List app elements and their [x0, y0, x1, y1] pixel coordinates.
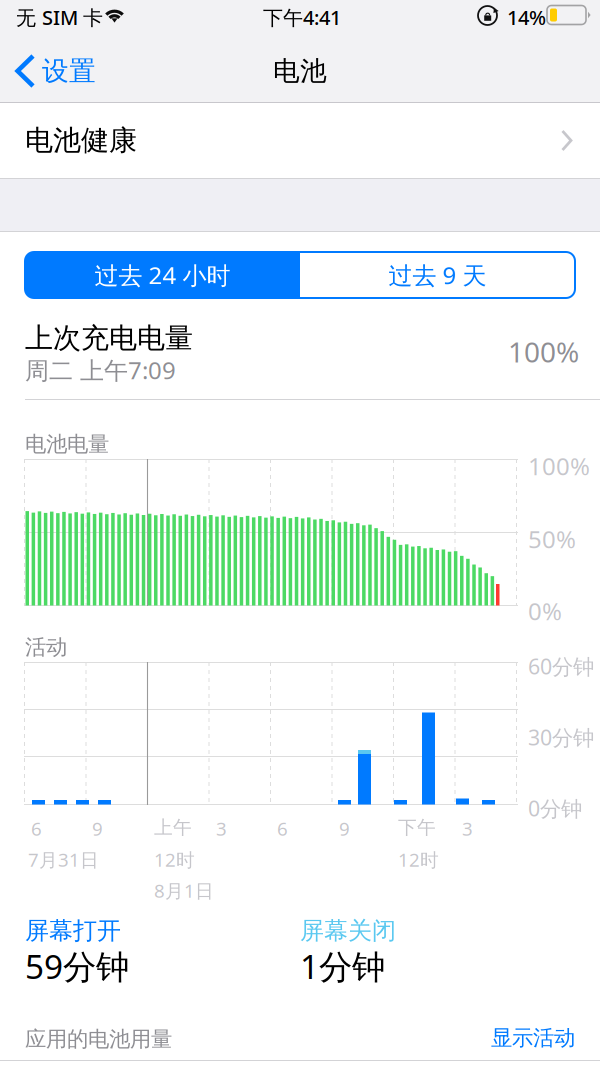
staticText: 0%: [528, 595, 562, 627]
staticText: 电池: [273, 55, 327, 87]
staticText: 应用的电池用量: [25, 1026, 172, 1052]
staticText: 屏幕打开: [25, 916, 121, 945]
staticText: 30分钟: [528, 723, 594, 751]
staticText: 12时: [398, 847, 439, 872]
staticText: 9: [92, 816, 103, 841]
staticText: 周二 上午7:09: [25, 354, 176, 386]
staticText: 过去 9 天: [388, 259, 486, 291]
staticText: 下午: [398, 816, 436, 839]
staticText: 60分钟: [528, 652, 594, 680]
button[interactable]: 设置: [0, 39, 108, 103]
staticText: 3: [216, 816, 227, 841]
staticText: 无 SIM 卡: [16, 4, 103, 31]
staticText: 屏幕关闭: [300, 916, 396, 945]
staticText: 电池健康: [25, 123, 137, 158]
button[interactable]: 电池健康: [0, 103, 600, 178]
staticText: 6: [277, 816, 288, 841]
staticText: 14%: [507, 4, 546, 31]
staticText: 设置: [42, 55, 96, 87]
staticText: 0分钟: [528, 794, 582, 822]
staticText: 100%: [528, 450, 590, 482]
staticText: 9: [339, 816, 350, 841]
staticText: 100%: [508, 333, 579, 370]
staticText: 电池电量: [25, 431, 109, 457]
staticText: 8月1日: [154, 878, 214, 903]
staticText: 1分钟: [300, 944, 385, 988]
staticText: 6: [31, 816, 42, 841]
button[interactable]: 显示活动: [0, 1024, 575, 1052]
staticText: 过去 24 小时: [94, 259, 230, 291]
staticText: 50%: [528, 523, 576, 555]
staticText: 下午4:41: [263, 4, 341, 31]
staticText: 12时: [154, 847, 195, 872]
staticText: 显示活动: [491, 1025, 575, 1051]
staticText: 上午: [154, 816, 192, 839]
button[interactable]: 过去 24 小时: [25, 252, 300, 298]
staticText: 3: [462, 816, 473, 841]
staticText: 活动: [25, 634, 67, 660]
button[interactable]: 过去 9 天: [300, 252, 575, 298]
staticText: 59分钟: [25, 944, 129, 988]
staticText: 7月31日: [28, 847, 99, 872]
staticText: 上次充电电量: [25, 321, 193, 355]
